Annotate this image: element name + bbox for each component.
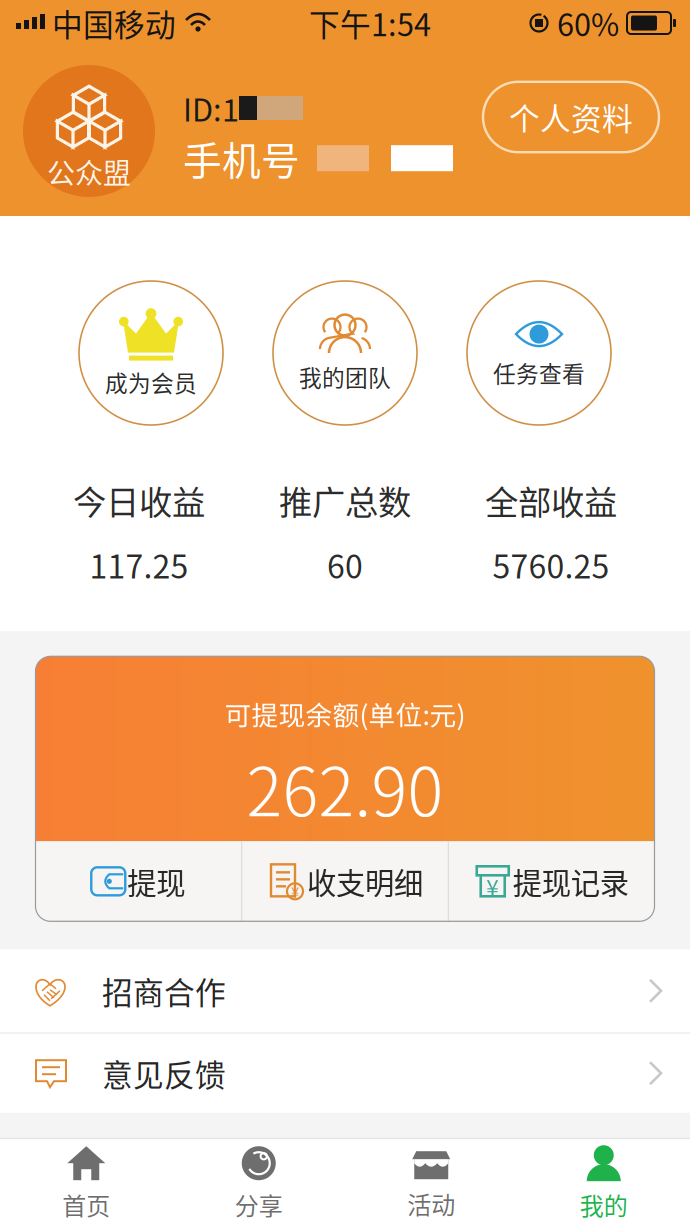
button[interactable]: 我的团队 xyxy=(273,281,417,425)
button[interactable]: 成为会员 xyxy=(79,281,223,425)
button[interactable]: 任务查看 xyxy=(467,281,611,425)
staticText: 中国移动 xyxy=(52,1,176,45)
staticText: 公众盟 xyxy=(47,151,131,192)
staticText: 60 xyxy=(327,541,363,588)
staticText: 5760.25 xyxy=(492,541,609,588)
staticText: 分享 xyxy=(235,1187,283,1222)
staticText: 任务查看 xyxy=(493,356,585,389)
staticText: 招商合作 xyxy=(102,969,226,1013)
button[interactable]: 招商合作 xyxy=(0,949,690,1032)
staticText: 成为会员 xyxy=(105,366,197,398)
staticText: 手机号 xyxy=(183,130,300,186)
staticText: 60% xyxy=(557,1,619,45)
staticText: 个人资料 xyxy=(509,95,633,139)
staticText: 可提现余额(单位:元) xyxy=(224,694,465,733)
staticText: 提现 xyxy=(127,860,185,903)
staticText: 推广总数 xyxy=(279,476,411,524)
staticText: 提现记录 xyxy=(513,860,629,903)
staticText: 收支明细 xyxy=(307,860,423,903)
staticText: ¥ xyxy=(486,870,499,903)
button[interactable]: 首页 xyxy=(0,1139,172,1227)
button[interactable]: ¥ xyxy=(449,841,654,921)
staticText: 我的 xyxy=(580,1187,628,1222)
button[interactable]: 意见反馈 xyxy=(0,1034,690,1113)
button[interactable]: 活动 xyxy=(345,1139,517,1227)
staticText: ¥ xyxy=(291,881,299,902)
staticText: 下午1:54 xyxy=(309,1,431,45)
staticText: 全部收益 xyxy=(485,476,617,524)
staticText: 我的团队 xyxy=(299,360,391,393)
staticText: 今日收益 xyxy=(73,476,205,524)
staticText: ID:1 xyxy=(183,86,239,130)
button[interactable]: 个人资料 xyxy=(483,82,659,152)
staticText: 117.25 xyxy=(89,541,188,588)
button[interactable]: 我的 xyxy=(517,1139,690,1227)
staticText: 活动 xyxy=(407,1186,455,1221)
staticText: 首页 xyxy=(62,1187,110,1222)
button[interactable]: 分享 xyxy=(172,1139,345,1227)
button[interactable]: 提现 xyxy=(35,841,241,921)
staticText: 意见反馈 xyxy=(102,1051,226,1095)
button[interactable]: ¥ xyxy=(242,841,448,921)
staticText: 262.90 xyxy=(246,739,443,835)
